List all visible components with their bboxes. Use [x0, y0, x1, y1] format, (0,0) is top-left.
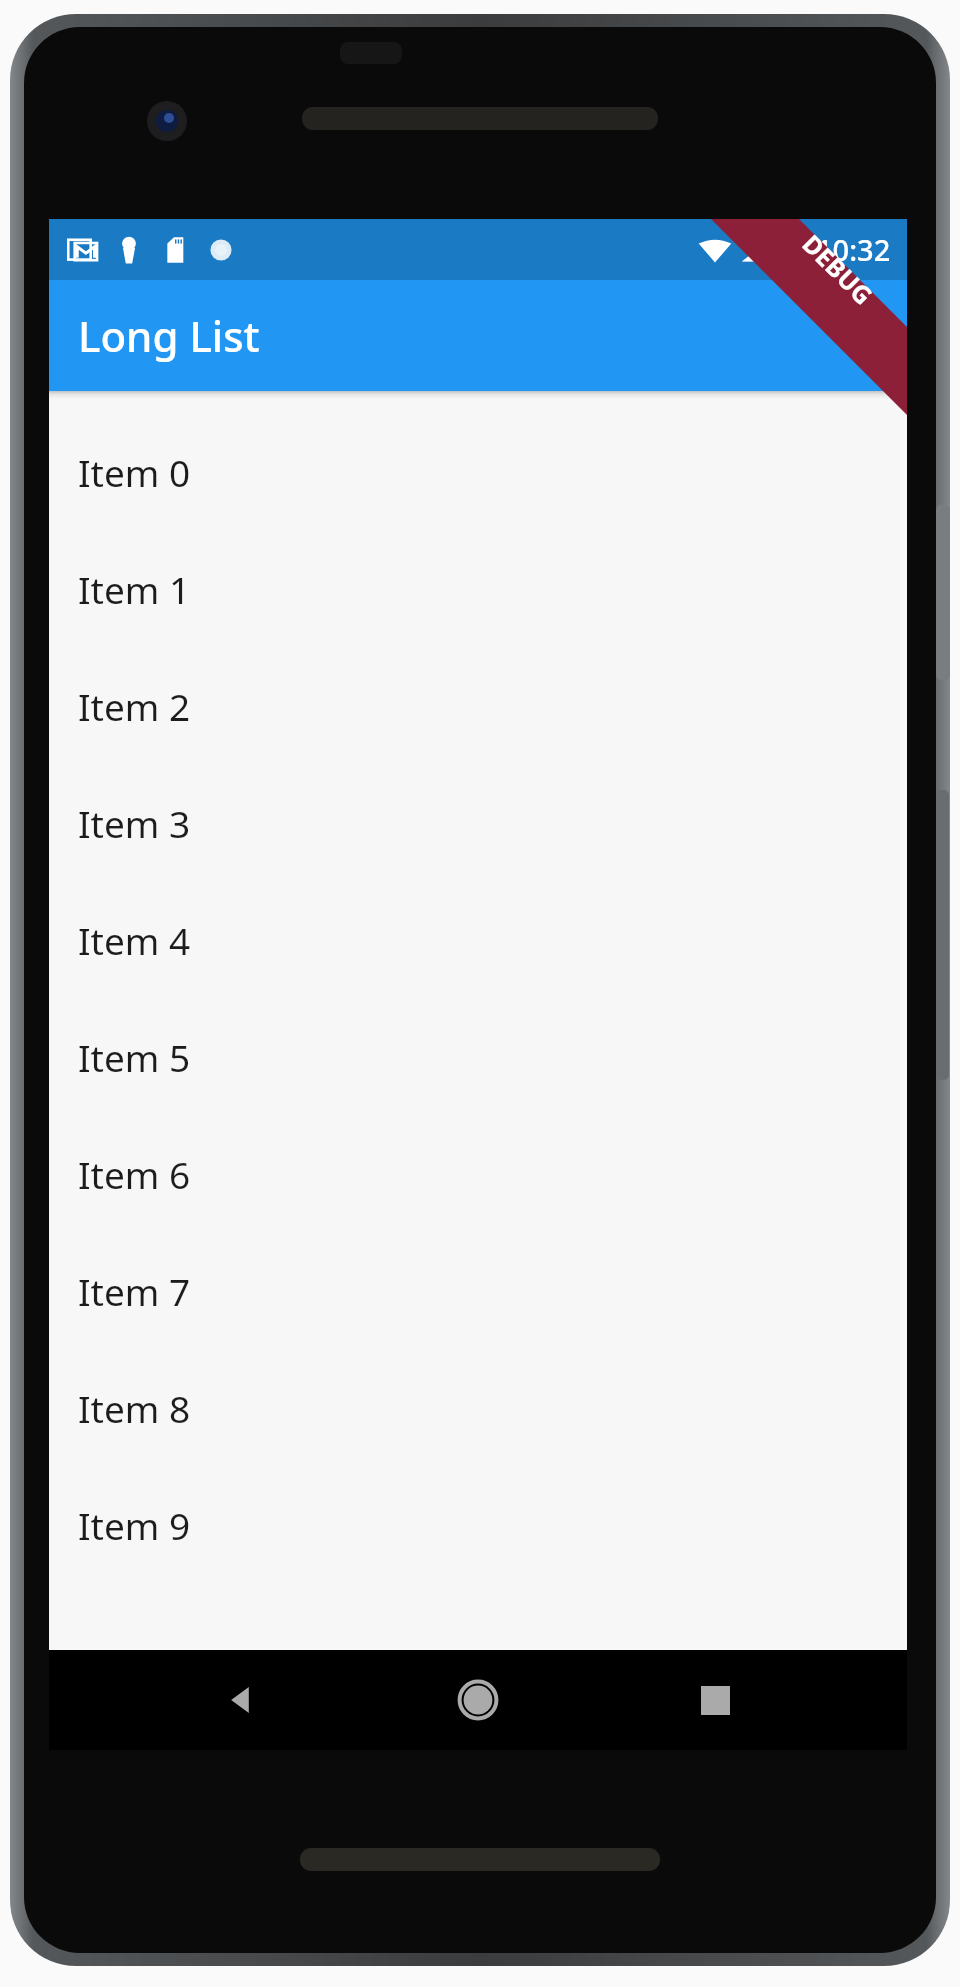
- button[interactable]: Item 1: [49, 530, 907, 647]
- button[interactable]: Item 2: [49, 647, 907, 764]
- staticText: DEBUG: [796, 227, 880, 311]
- button[interactable]: Item 3: [49, 764, 907, 881]
- button[interactable]: Home: [434, 1656, 522, 1744]
- button[interactable]: Item 6: [49, 1115, 907, 1232]
- staticText: Long List: [78, 307, 260, 364]
- staticText: Item 8: [78, 1383, 191, 1433]
- staticText: Item 5: [78, 1032, 191, 1082]
- button[interactable]: Recent apps: [671, 1656, 759, 1744]
- staticText: Item 4: [78, 915, 191, 965]
- staticText: Item 3: [78, 798, 191, 848]
- staticText: Item 7: [78, 1266, 191, 1316]
- button[interactable]: Item 4: [49, 881, 907, 998]
- button[interactable]: Item 5: [49, 998, 907, 1115]
- button[interactable]: Item 8: [49, 1349, 907, 1466]
- staticText: Item 2: [78, 681, 191, 731]
- staticText: Item 6: [78, 1149, 191, 1199]
- button[interactable]: Item 0: [49, 413, 907, 530]
- button[interactable]: Back: [198, 1656, 286, 1744]
- button[interactable]: Item 7: [49, 1232, 907, 1349]
- button[interactable]: Item 9: [49, 1466, 907, 1583]
- staticText: Item 1: [78, 564, 191, 614]
- staticText: Item 0: [78, 447, 191, 497]
- staticText: Item 9: [78, 1500, 191, 1550]
- staticText: 10:32: [816, 230, 891, 269]
